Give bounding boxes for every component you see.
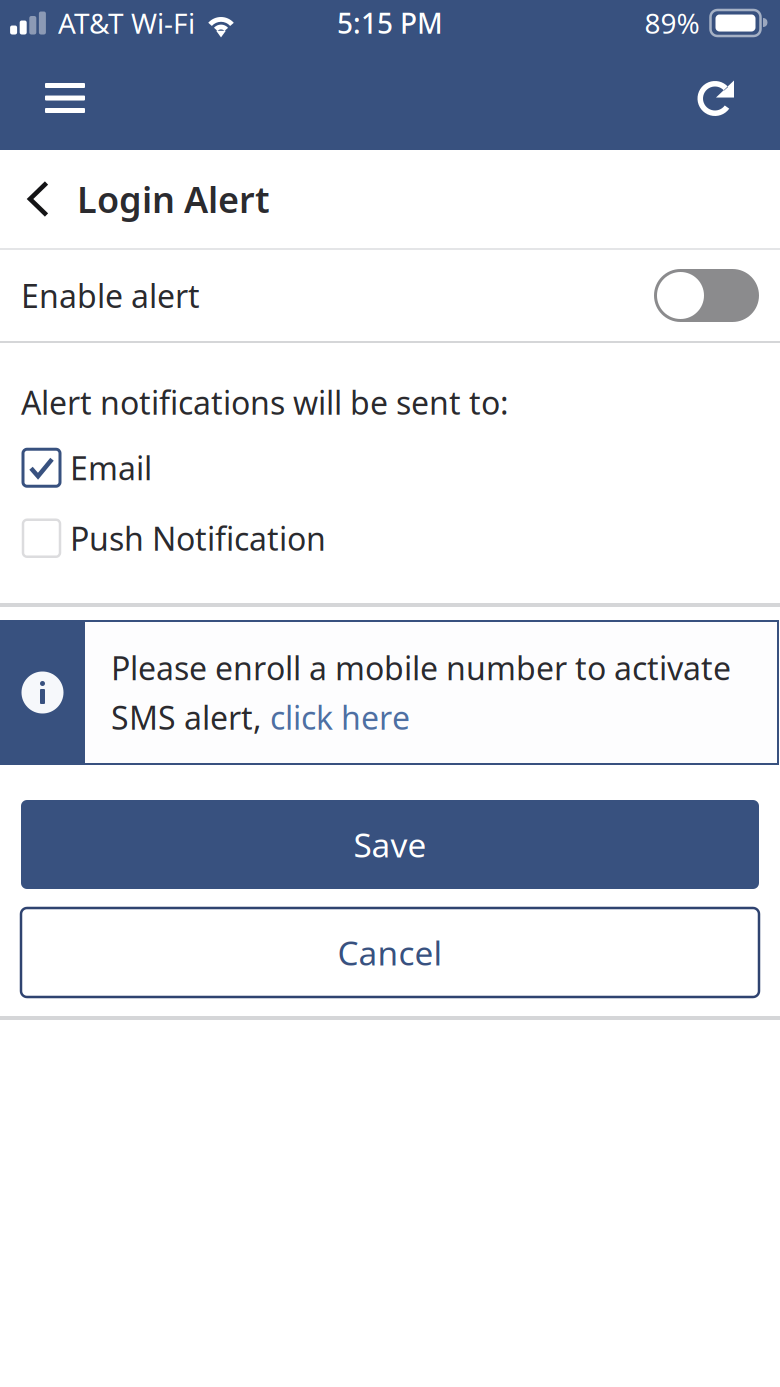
button[interactable]: Email <box>21 423 759 489</box>
button[interactable]: Refresh <box>671 51 780 144</box>
button[interactable]: Save <box>21 800 759 889</box>
button[interactable]: click here <box>270 696 410 738</box>
staticText: Email <box>70 446 152 489</box>
staticText: Please enroll a mobile number to activat… <box>111 646 731 689</box>
staticText: Alert notifications will be sent to: <box>21 381 509 423</box>
button[interactable]: Push Notification <box>21 489 759 559</box>
staticText: 89% <box>644 4 699 42</box>
button[interactable]: Cancel <box>21 908 759 997</box>
staticText: 5:15 PM <box>337 4 443 42</box>
staticText: SMS alert, <box>111 696 270 738</box>
staticText: Push Notification <box>70 517 326 559</box>
staticText: Login Alert <box>77 175 270 223</box>
staticText: click here <box>270 696 410 738</box>
staticText: Save <box>353 822 426 867</box>
button[interactable]: Enable alert <box>654 269 759 322</box>
staticText: Enable alert <box>21 274 200 317</box>
button[interactable]: Back to Login Alert <box>0 147 270 251</box>
button[interactable]: Menu <box>0 53 111 143</box>
staticText: AT&T Wi-Fi <box>58 4 195 42</box>
staticText: Cancel <box>337 930 442 975</box>
